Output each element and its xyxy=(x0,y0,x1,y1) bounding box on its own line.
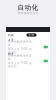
staticText: 每天上午 9:00 自动运行 xyxy=(8,47,32,54)
staticText: 管理你的自动化 xyxy=(17,11,38,15)
staticText: 每天上午 9:00 自动运行 xyxy=(8,61,32,68)
staticText: 列表 xyxy=(8,33,14,37)
staticText: 明天 xyxy=(8,52,14,56)
staticText: 自动化触发条件设置 xyxy=(8,54,32,60)
staticText: 全部 xyxy=(28,33,34,37)
staticText: 今天 xyxy=(8,38,14,42)
staticText: 自动化触发条件设置 xyxy=(8,40,32,46)
staticText: 自动化 xyxy=(17,3,38,12)
